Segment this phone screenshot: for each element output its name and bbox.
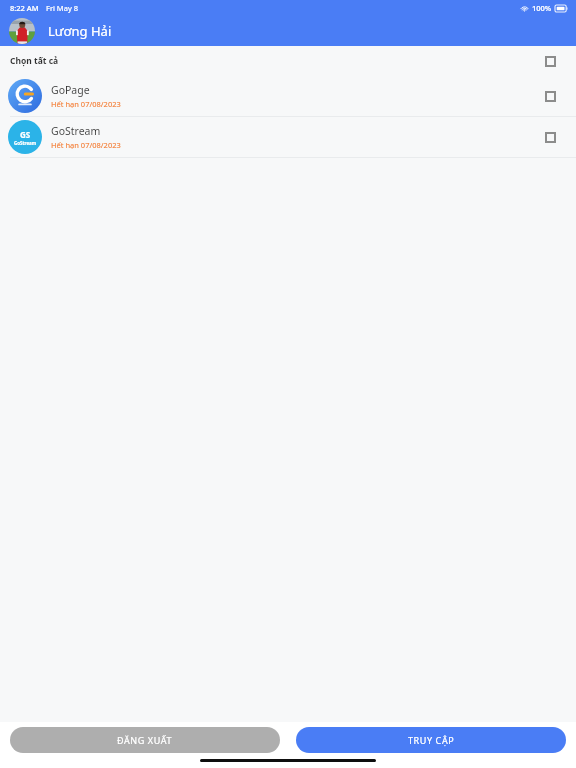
staticText: TRUY CẬP xyxy=(408,734,455,746)
button[interactable]: Profile picture xyxy=(9,18,35,44)
staticText: GS xyxy=(20,129,31,140)
staticText: 100% xyxy=(532,3,552,13)
button[interactable]: TRUY CẬP xyxy=(296,727,566,753)
staticText: GoPage xyxy=(51,83,90,97)
staticText: Hết hạn 07/08/2023 xyxy=(51,99,121,109)
staticText: Fri May 8 xyxy=(46,3,78,13)
button[interactable]: Chọn tất cả xyxy=(0,46,576,76)
staticText: ĐĂNG XUẤT xyxy=(117,734,173,746)
staticText: Lương Hải xyxy=(48,22,112,40)
button[interactable]: Select xyxy=(540,86,560,106)
staticText: GoStream xyxy=(14,140,37,146)
button[interactable]: ĐĂNG XUẤT xyxy=(10,727,280,753)
staticText: GoStream xyxy=(51,124,101,138)
button[interactable]: GoPage xyxy=(0,76,576,116)
staticText: 8:22 AM xyxy=(10,3,39,13)
button[interactable]: Select xyxy=(540,127,560,147)
button[interactable]: GS xyxy=(0,117,576,157)
staticText: Chọn tất cả xyxy=(10,55,59,67)
button[interactable]: Select xyxy=(540,51,560,71)
staticText: Hết hạn 07/08/2023 xyxy=(51,140,121,150)
